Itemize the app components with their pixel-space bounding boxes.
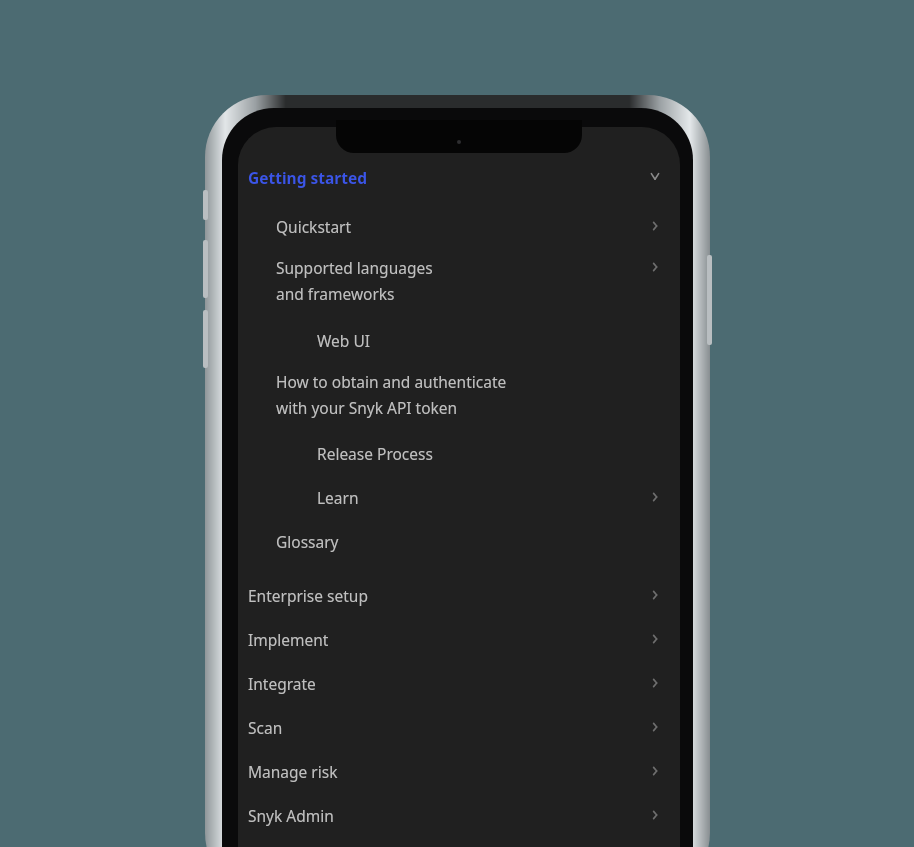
- other: Expand: [648, 260, 662, 274]
- staticText: with your Snyk API token: [276, 397, 458, 418]
- staticText: Learn: [317, 487, 359, 508]
- staticText: Quickstart: [276, 216, 352, 237]
- other: Expand: [648, 490, 662, 504]
- other: Collapse: [648, 170, 662, 184]
- other: Expand: [648, 588, 662, 602]
- other: Expand: [648, 808, 662, 822]
- staticText: Snyk Admin: [248, 805, 334, 826]
- other: Expand: [648, 720, 662, 734]
- staticText: Implement: [248, 629, 329, 650]
- other: Expand: [648, 632, 662, 646]
- staticText: Integrate: [248, 673, 316, 694]
- button[interactable]: Snyk Admin: [238, 800, 680, 830]
- button[interactable]: Release Process: [238, 438, 680, 468]
- button[interactable]: Enterprise setup: [238, 580, 680, 610]
- button[interactable]: Scan: [238, 712, 680, 742]
- button[interactable]: Learn: [238, 482, 680, 512]
- button[interactable]: Implement: [238, 624, 680, 654]
- staticText: Enterprise setup: [248, 585, 368, 606]
- other: Expand: [648, 219, 662, 233]
- button[interactable]: Web UI: [238, 325, 680, 355]
- staticText: Scan: [248, 717, 283, 738]
- button[interactable]: Getting started: [238, 160, 680, 194]
- staticText: and frameworks: [276, 283, 395, 304]
- staticText: Glossary: [276, 531, 339, 552]
- staticText: How to obtain and authenticate: [276, 371, 507, 392]
- button[interactable]: Glossary: [238, 526, 680, 556]
- button[interactable]: Supported languages: [238, 253, 680, 309]
- staticText: Getting started: [248, 167, 367, 188]
- staticText: Web UI: [317, 330, 370, 351]
- button[interactable]: How to obtain and authenticate: [238, 367, 680, 423]
- button[interactable]: Manage risk: [238, 756, 680, 786]
- button[interactable]: Integrate: [238, 668, 680, 698]
- staticText: Supported languages: [276, 257, 433, 278]
- other: Expand: [648, 676, 662, 690]
- staticText: Release Process: [317, 443, 433, 464]
- other: Expand: [648, 764, 662, 778]
- staticText: Manage risk: [248, 761, 338, 782]
- button[interactable]: Quickstart: [238, 211, 680, 241]
